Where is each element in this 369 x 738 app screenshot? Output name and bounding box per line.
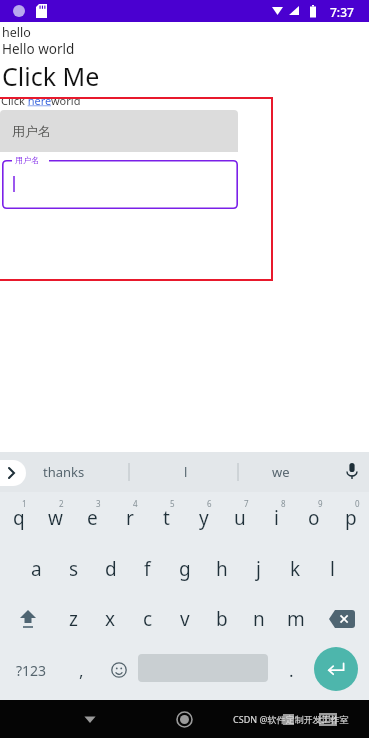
staticText: 8 xyxy=(281,498,286,509)
staticText: f xyxy=(144,556,151,582)
staticText: r xyxy=(126,505,134,531)
staticText: t xyxy=(163,505,170,531)
button[interactable]: ?123 xyxy=(0,644,62,696)
button[interactable]: e xyxy=(74,492,111,544)
staticText: d xyxy=(105,556,117,582)
button[interactable]: Emoji xyxy=(100,644,138,696)
button[interactable]: h xyxy=(203,544,240,594)
staticText: ?123 xyxy=(16,661,47,680)
button[interactable]: , xyxy=(62,644,100,696)
button[interactable]: thanks xyxy=(34,452,94,492)
staticText: a xyxy=(31,556,42,582)
staticText: l xyxy=(330,556,335,582)
staticText: 9 xyxy=(318,498,323,509)
button[interactable]: . xyxy=(272,644,310,696)
button[interactable]: Shift xyxy=(0,594,55,644)
button[interactable]: i xyxy=(258,492,295,544)
staticText: j xyxy=(256,556,261,582)
staticText: 5 xyxy=(170,498,175,509)
staticText: 用户名 xyxy=(12,123,51,139)
staticText: we xyxy=(272,463,290,481)
staticText: n xyxy=(253,606,265,632)
staticText: , xyxy=(79,659,84,682)
button[interactable]: l xyxy=(156,452,216,492)
button[interactable]: Click hereworld xyxy=(1,93,81,108)
button[interactable]: w xyxy=(37,492,74,544)
button[interactable]: a xyxy=(18,544,55,594)
button[interactable]: s xyxy=(55,544,92,594)
staticText: k xyxy=(290,556,301,582)
button[interactable]: d xyxy=(92,544,129,594)
staticText: 用户名 xyxy=(15,155,39,165)
staticText: x xyxy=(105,606,116,632)
button[interactable]: o xyxy=(295,492,332,544)
staticText: 0 xyxy=(355,498,360,509)
button[interactable]: j xyxy=(240,544,277,594)
staticText: g xyxy=(179,556,191,582)
button[interactable]: x xyxy=(92,594,129,644)
staticText: s xyxy=(69,556,79,582)
button[interactable]: 用户名 xyxy=(0,110,238,152)
staticText: 3 xyxy=(96,498,101,509)
button[interactable]: p xyxy=(332,492,369,544)
button[interactable]: Home xyxy=(156,700,212,738)
button[interactable]: b xyxy=(203,594,240,644)
button[interactable]: k xyxy=(277,544,314,594)
button[interactable]: f xyxy=(129,544,166,594)
staticText: w xyxy=(48,505,63,531)
staticText: i xyxy=(274,505,279,531)
button[interactable]: z xyxy=(55,594,92,644)
staticText: 6 xyxy=(207,498,212,509)
staticText: hello xyxy=(2,24,31,41)
button[interactable]: l xyxy=(314,544,351,594)
staticText: Hello world xyxy=(2,40,75,58)
staticText: 7:37 xyxy=(330,4,354,20)
button[interactable]: Enter xyxy=(314,647,358,691)
button[interactable]: More suggestions xyxy=(0,460,26,486)
staticText: CSDN @软件定制开发工作室 xyxy=(233,713,349,725)
button[interactable]: m xyxy=(277,594,314,644)
button[interactable]: n xyxy=(240,594,277,644)
staticText: h xyxy=(216,556,228,582)
button[interactable]: r xyxy=(111,492,148,544)
button[interactable]: y xyxy=(185,492,222,544)
button[interactable]: v xyxy=(166,594,203,644)
staticText: p xyxy=(345,505,357,531)
staticText: e xyxy=(87,505,98,531)
staticText: q xyxy=(13,505,25,531)
button[interactable]: Hide keyboard xyxy=(62,700,118,738)
button[interactable]: Switch keyboard xyxy=(310,700,346,738)
button[interactable]: Recent apps xyxy=(270,700,306,738)
staticText: 1 xyxy=(22,498,27,509)
button[interactable]: t xyxy=(148,492,185,544)
staticText: m xyxy=(287,606,305,632)
staticText: o xyxy=(308,505,320,531)
button[interactable]: c xyxy=(129,594,166,644)
staticText: thanks xyxy=(43,463,85,481)
staticText: . xyxy=(289,659,294,682)
button[interactable]: 用户名 xyxy=(2,160,238,209)
button[interactable]: u xyxy=(221,492,258,544)
button[interactable]: Backspace xyxy=(314,594,369,644)
staticText: v xyxy=(180,606,190,632)
button[interactable]: g xyxy=(166,544,203,594)
staticText: y xyxy=(199,505,209,531)
staticText: z xyxy=(69,606,78,632)
staticText: b xyxy=(216,606,228,632)
button[interactable]: we xyxy=(251,452,311,492)
button[interactable]: Voice input xyxy=(340,460,364,484)
staticText: 2 xyxy=(59,498,64,509)
staticText: u xyxy=(234,505,246,531)
staticText: c xyxy=(143,606,153,632)
staticText: 4 xyxy=(133,498,138,509)
staticText: l xyxy=(184,463,188,481)
button[interactable]: q xyxy=(0,492,37,544)
staticText: Click Me xyxy=(2,59,100,93)
staticText: 7 xyxy=(244,498,249,509)
